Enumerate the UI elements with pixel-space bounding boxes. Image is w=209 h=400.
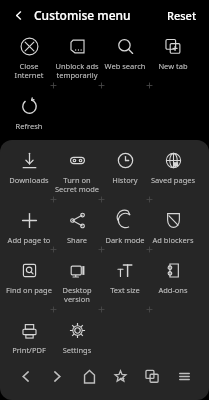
button[interactable]: Settings (53, 314, 101, 355)
button[interactable]: Forward (42, 361, 72, 391)
button[interactable]: Refresh (5, 90, 53, 131)
button[interactable]: Saved pages (149, 144, 197, 185)
button[interactable]: Reset (163, 4, 201, 27)
staticText: Find on page (5, 285, 53, 295)
button[interactable]: Web search (101, 30, 149, 71)
button[interactable]: Text size (101, 254, 149, 295)
staticText: Add-ons (149, 285, 197, 295)
button[interactable]: Add-ons (149, 254, 197, 295)
staticText: Web search (101, 61, 149, 71)
button[interactable]: Ad blockers (149, 204, 197, 245)
button[interactable]: Menu (169, 361, 199, 391)
button[interactable]: Downloads (5, 144, 53, 185)
staticText: Share (53, 235, 101, 245)
staticText: Reset (167, 8, 197, 23)
staticText: Unblock ads temporarily (53, 61, 101, 81)
staticText: Customise menu (34, 7, 131, 23)
staticText: Turn on Secret mode (53, 175, 101, 195)
staticText: Close Internet (5, 61, 53, 81)
button[interactable]: Desktop version (53, 254, 101, 305)
staticText: Settings (53, 345, 101, 355)
button[interactable]: Tabs (137, 361, 167, 391)
button[interactable]: Add page to (5, 204, 53, 245)
button[interactable]: Turn on Secret mode (53, 144, 101, 195)
staticText: New tab (149, 61, 197, 71)
button[interactable]: New tab (149, 30, 197, 71)
staticText: Desktop version (53, 285, 101, 305)
button[interactable]: Bookmarks (105, 361, 135, 391)
staticText: Add page to (5, 235, 53, 245)
button[interactable]: Back (10, 361, 40, 391)
staticText: Ad blockers (149, 235, 197, 245)
button[interactable]: Unblock ads temporarily (53, 30, 101, 81)
staticText: Refresh (5, 121, 53, 131)
button[interactable]: Close Internet (5, 30, 53, 81)
button[interactable]: Print/PDF (5, 314, 53, 355)
button[interactable]: Dark mode (101, 204, 149, 245)
staticText: Dark mode (101, 235, 149, 245)
staticText: Saved pages (149, 175, 197, 185)
button[interactable]: Find on page (5, 254, 53, 295)
staticText: History (101, 175, 149, 185)
staticText: Downloads (5, 175, 53, 185)
staticText: Text size (101, 285, 149, 295)
staticText: Print/PDF (5, 345, 53, 355)
button[interactable]: Share (53, 204, 101, 245)
button[interactable]: Home (74, 361, 104, 391)
button[interactable]: History (101, 144, 149, 185)
button[interactable]: Back (8, 5, 28, 25)
